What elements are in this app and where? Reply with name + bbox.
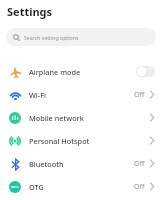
staticText: Off bbox=[134, 159, 145, 169]
staticText: Settings bbox=[7, 4, 53, 19]
staticText: Off bbox=[134, 90, 145, 100]
staticText: Search setting options bbox=[24, 34, 79, 41]
button[interactable]: Mobile network bbox=[0, 106, 162, 129]
staticText: Off bbox=[134, 182, 145, 192]
button[interactable]: Personal Hotspot bbox=[0, 129, 162, 152]
button[interactable]: Search setting options bbox=[6, 28, 156, 46]
staticText: OTG bbox=[29, 182, 44, 192]
staticText: Bluetooth bbox=[29, 159, 64, 169]
button[interactable]: Airplane mode bbox=[0, 60, 162, 83]
button[interactable]: Bluetooth bbox=[0, 152, 162, 175]
staticText: Airplane mode bbox=[29, 67, 81, 77]
button[interactable]: Wi-Fi bbox=[0, 83, 162, 106]
staticText: Mobile network bbox=[29, 113, 84, 123]
button[interactable]: OTG bbox=[0, 175, 162, 198]
staticText: Wi-Fi bbox=[29, 90, 47, 100]
staticText: Personal Hotspot bbox=[29, 136, 90, 146]
